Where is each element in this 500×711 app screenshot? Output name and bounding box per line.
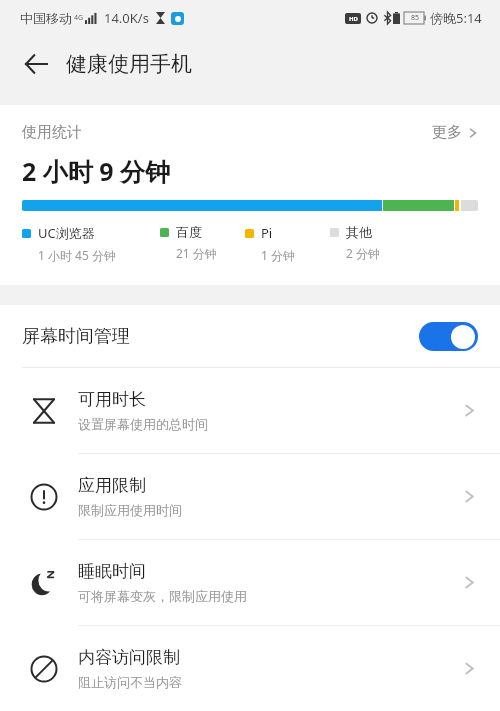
- staticText: 可用时长: [78, 389, 146, 410]
- staticText: 1 小时 45 分钟: [38, 247, 116, 263]
- staticText: 应用限制: [78, 475, 146, 496]
- staticText: 2 分钟: [346, 245, 380, 261]
- staticText: 其他: [346, 224, 372, 240]
- staticText: 14.0K/s: [104, 9, 149, 27]
- button[interactable]: 睡眠时间: [0, 540, 500, 625]
- staticText: HD: [349, 15, 358, 23]
- staticText: 中国移动: [20, 10, 72, 26]
- staticText: 4G: [74, 13, 84, 23]
- staticText: 21 分钟: [176, 245, 217, 261]
- staticText: Pi: [261, 224, 273, 242]
- button[interactable]: 内容访问限制: [0, 626, 500, 711]
- button[interactable]: 屏幕时间管理: [0, 305, 500, 367]
- staticText: 使用统计: [22, 123, 82, 142]
- staticText: 阻止访问不当内容: [78, 674, 182, 690]
- staticText: 更多: [432, 123, 462, 142]
- staticText: 睡眠时间: [78, 561, 146, 582]
- button[interactable]: 可用时长: [0, 368, 500, 453]
- button[interactable]: 屏幕时间管理开关: [419, 322, 478, 351]
- staticText: 设置屏幕使用的总时间: [78, 416, 208, 432]
- staticText: 百度: [176, 224, 202, 240]
- staticText: 限制应用使用时间: [78, 502, 182, 518]
- staticText: 可将屏幕变灰，限制应用使用: [78, 588, 247, 604]
- staticText: 85: [411, 13, 420, 23]
- staticText: UC浏览器: [38, 224, 95, 242]
- button[interactable]: 返回: [12, 40, 60, 88]
- button[interactable]: 更多: [432, 123, 478, 142]
- staticText: 2 小时 9 分钟: [22, 154, 171, 188]
- staticText: 屏幕时间管理: [22, 325, 130, 348]
- button[interactable]: 应用限制: [0, 454, 500, 539]
- staticText: 1 分钟: [261, 247, 295, 263]
- staticText: 内容访问限制: [78, 647, 180, 668]
- staticText: 健康使用手机: [66, 51, 192, 77]
- staticText: 傍晚5:14: [430, 9, 482, 27]
